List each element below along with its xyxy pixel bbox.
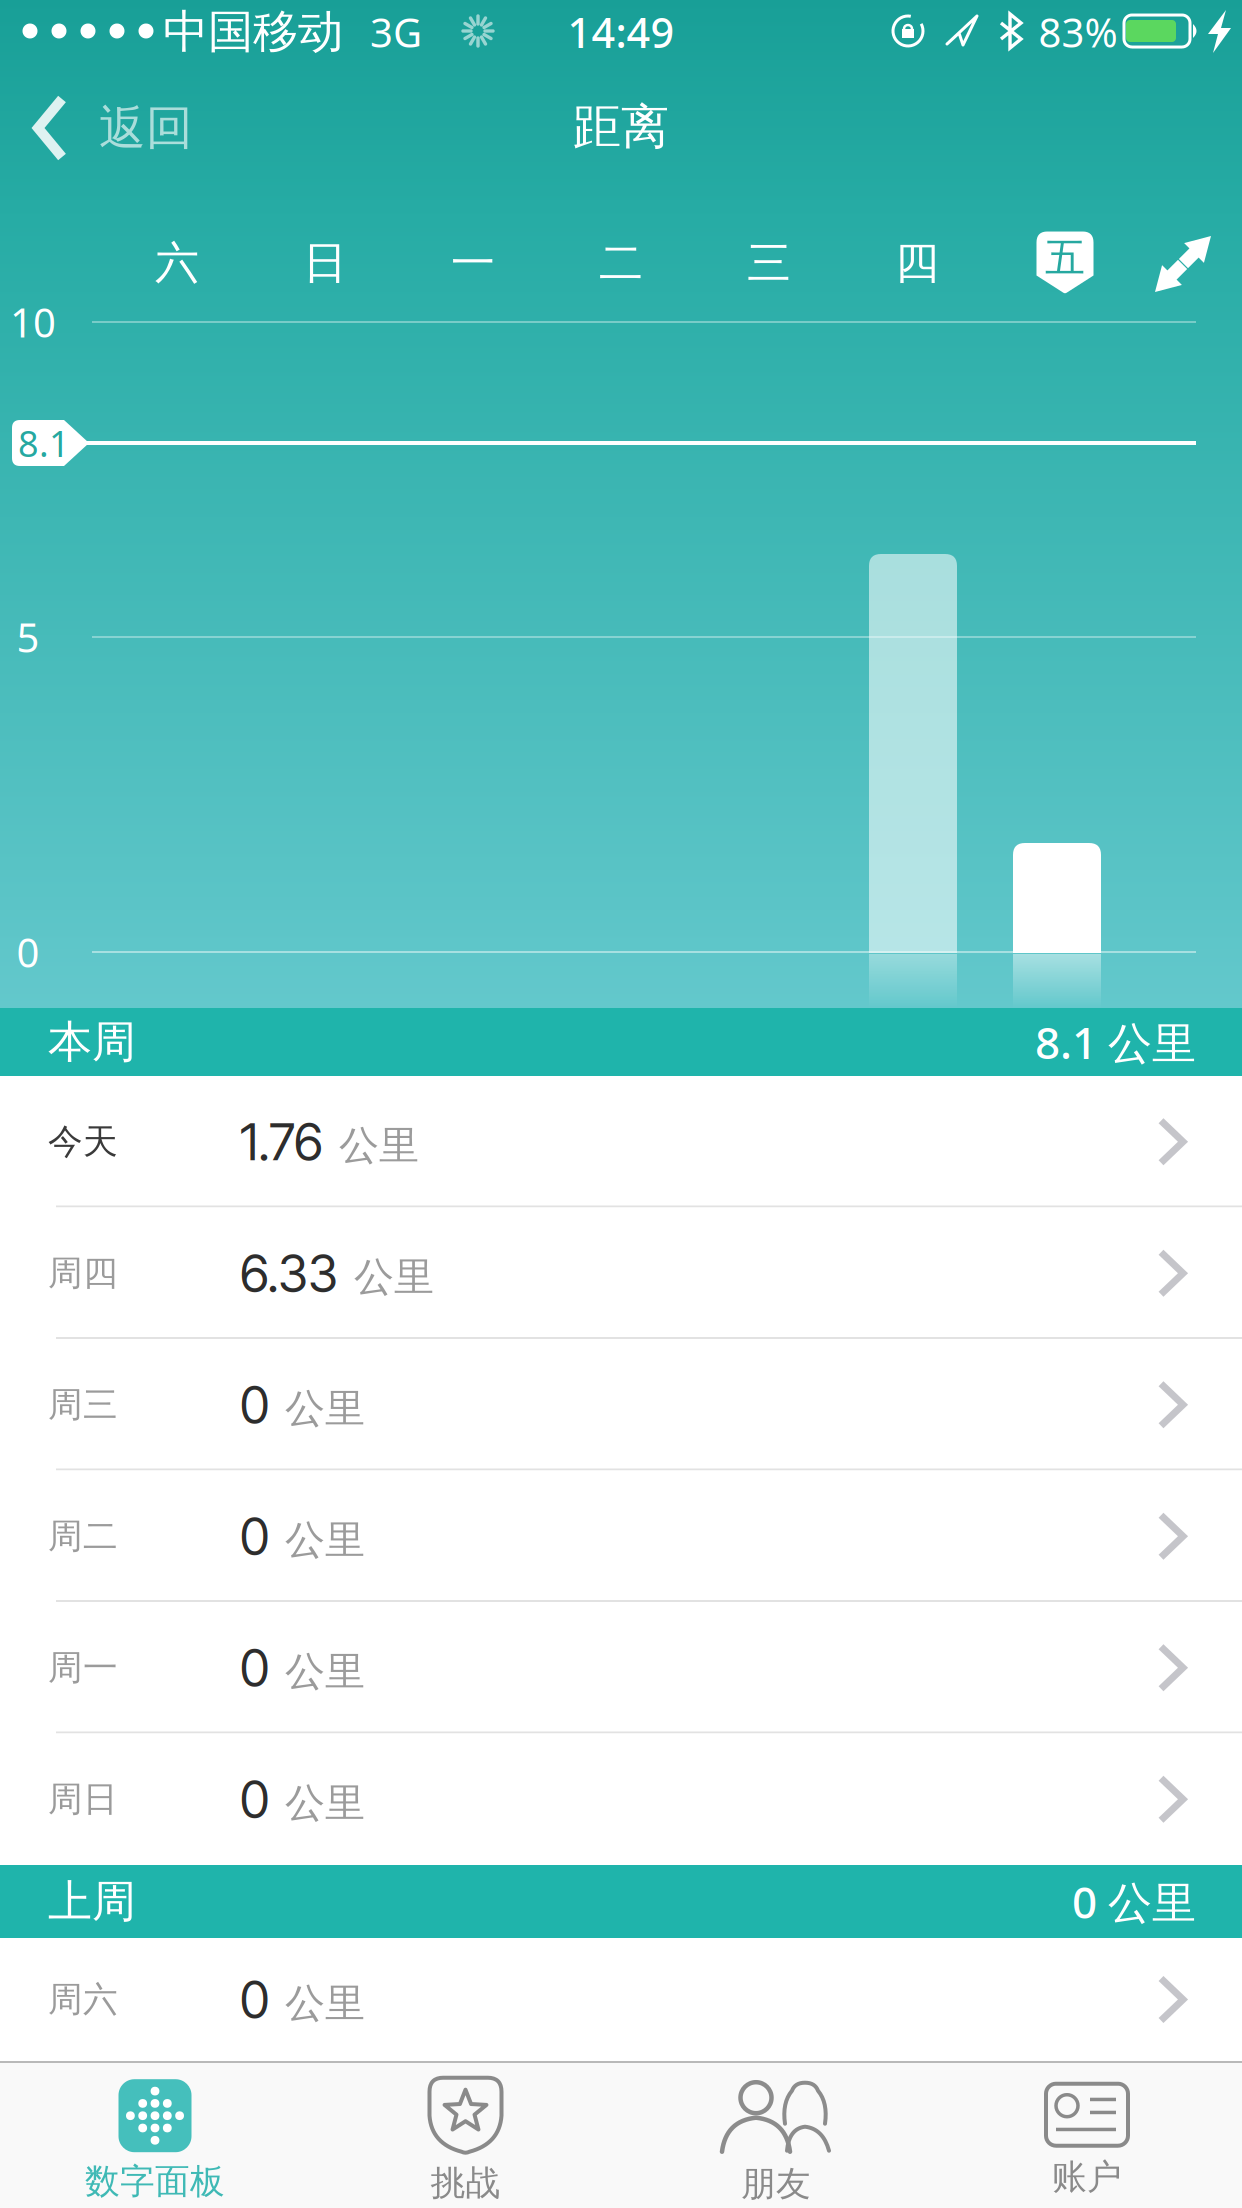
staticText: 公里 (354, 1253, 434, 1302)
button[interactable]: 三 (714, 218, 824, 308)
staticText: 公里 (285, 1779, 365, 1828)
staticText: 数字面板 (85, 2160, 225, 2203)
button[interactable]: 一 (418, 218, 528, 308)
button[interactable]: 数字面板 (0, 2067, 310, 2208)
button[interactable]: 朋友 (621, 2067, 931, 2208)
staticText: 周六 (48, 1978, 118, 2021)
staticText: 一 (451, 236, 495, 290)
button[interactable]: 四 (862, 218, 972, 308)
button[interactable]: 今天 (0, 1076, 1242, 1207)
staticText: 四 (895, 236, 939, 290)
staticText: 8.1 (18, 419, 70, 467)
staticText: 1.76 (240, 1111, 323, 1172)
staticText: 3G (370, 5, 422, 58)
staticText: 返回 (99, 99, 193, 157)
button[interactable]: 日 (270, 218, 380, 308)
button[interactable] (1153, 234, 1213, 294)
staticText: 六 (155, 236, 199, 290)
button[interactable]: 六 (122, 218, 232, 308)
staticText: 公里 (285, 1516, 365, 1565)
staticText: 公里 (285, 1979, 365, 2028)
staticText: 14:49 (567, 5, 674, 59)
button[interactable]: 五 (1036, 231, 1093, 294)
staticText: 周二 (48, 1515, 118, 1558)
staticText: 周四 (48, 1252, 118, 1295)
staticText: 距离 (573, 97, 669, 156)
staticText: 三 (747, 236, 791, 290)
staticText: 日 (303, 236, 347, 290)
button[interactable]: 账户 (932, 2067, 1242, 2208)
staticText: 挑战 (430, 2162, 500, 2204)
staticText: 公里 (285, 1384, 365, 1433)
staticText: 周三 (48, 1383, 118, 1426)
button[interactable]: 周三 (0, 1339, 1242, 1470)
staticText: 0 公里 (1072, 1872, 1196, 1931)
staticText: 0 (240, 1769, 269, 1830)
staticText: 5 (16, 610, 39, 663)
button[interactable]: 周一 (0, 1602, 1242, 1733)
staticText: 8.1 公里 (1035, 1013, 1196, 1071)
button[interactable]: 周四 (0, 1207, 1242, 1339)
button[interactable]: 周六 (0, 1938, 1242, 2061)
staticText: 朋友 (741, 2163, 811, 2205)
staticText: 0 (240, 1374, 269, 1435)
button[interactable]: 周二 (0, 1470, 1242, 1602)
staticText: 本周 (48, 1015, 136, 1069)
staticText: 0 (240, 1506, 269, 1567)
staticText: 二 (599, 236, 643, 290)
staticText: 今天 (48, 1120, 118, 1163)
staticText: 账户 (1052, 2156, 1122, 2198)
staticText: 中国移动 (163, 4, 343, 60)
staticText: 周一 (48, 1646, 118, 1689)
button[interactable]: 挑战 (310, 2067, 620, 2208)
staticText: 0 (240, 1637, 269, 1698)
staticText: 0 (240, 1969, 269, 2030)
staticText: 0 (16, 925, 39, 978)
button[interactable]: 返回 (0, 63, 240, 193)
staticText: 6.33 (240, 1243, 338, 1304)
staticText: 公里 (339, 1121, 419, 1170)
staticText: 五 (1045, 233, 1085, 282)
staticText: 10 (10, 295, 56, 348)
staticText: 周日 (48, 1778, 118, 1821)
button[interactable]: 二 (566, 218, 676, 308)
button[interactable]: 周日 (0, 1733, 1242, 1865)
staticText: 公里 (285, 1647, 365, 1696)
staticText: 83% (1038, 5, 1117, 58)
staticText: 上周 (48, 1874, 136, 1928)
